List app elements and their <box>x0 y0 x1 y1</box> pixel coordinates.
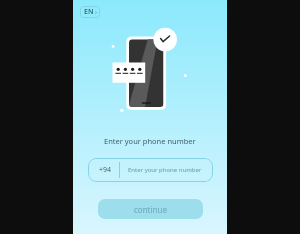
staticText: +94 <box>99 165 112 175</box>
staticText: Enter your phone number <box>128 166 202 174</box>
button[interactable]: continue <box>98 199 203 219</box>
staticText: continue <box>134 204 167 215</box>
button[interactable]: EN <box>80 6 100 18</box>
staticText: EN <box>84 7 94 17</box>
button[interactable]: +94 <box>88 158 213 182</box>
staticText: Enter your phone number <box>104 136 196 146</box>
staticText: › <box>95 8 97 16</box>
